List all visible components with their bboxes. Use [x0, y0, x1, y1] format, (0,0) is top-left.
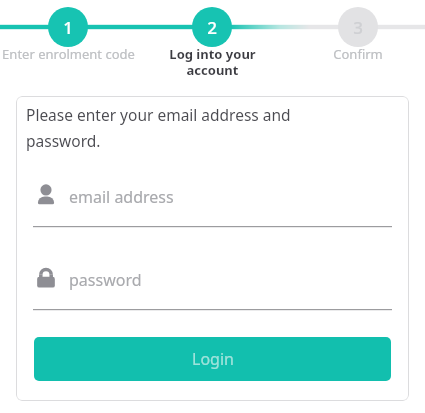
button[interactable]: Password: [33, 267, 392, 311]
staticText: 1: [63, 16, 73, 39]
staticText: Please enter your email address and pass…: [26, 104, 356, 152]
button[interactable]: Confirm: [303, 45, 413, 63]
staticText: 2: [207, 16, 217, 39]
staticText: Log into your account: [169, 45, 256, 78]
button[interactable]: Login: [34, 337, 391, 381]
staticText: Login: [192, 348, 234, 370]
staticText: email address: [69, 186, 174, 208]
button[interactable]: Enter enrolment code: [0, 45, 136, 63]
staticText: Confirm: [333, 45, 383, 63]
button[interactable]: Email address: [33, 184, 392, 228]
staticText: Enter enrolment code: [2, 45, 135, 63]
staticText: 3: [353, 16, 363, 39]
staticText: password: [69, 269, 142, 291]
button[interactable]: Log into your account: [152, 45, 272, 78]
